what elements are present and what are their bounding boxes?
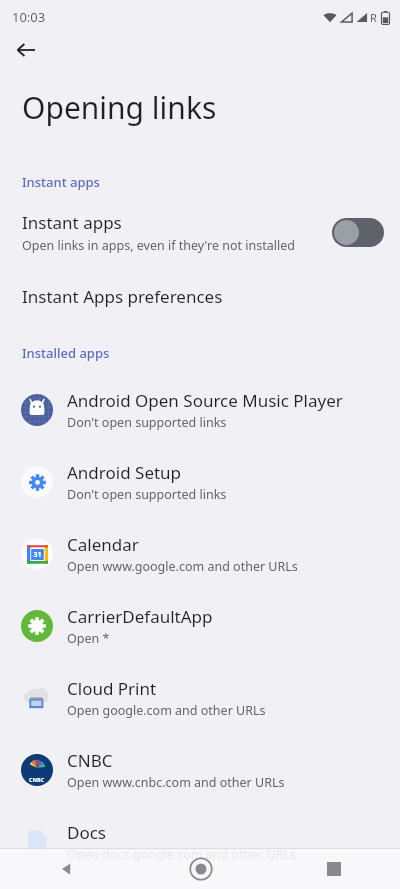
button[interactable]: Back <box>10 34 42 66</box>
button[interactable]: 31 <box>0 518 400 590</box>
button[interactable]: Docs <box>0 806 400 878</box>
staticText: Open www.cnbc.com and other URLs <box>67 774 285 791</box>
staticText: Instant Apps preferences <box>22 285 223 308</box>
staticText: Opening links <box>22 87 217 128</box>
button[interactable]: Instant Apps preferences <box>0 279 400 313</box>
staticText: Android Setup <box>67 461 182 484</box>
staticText: Open docs.google.com and other URLs <box>67 846 297 863</box>
staticText: R <box>370 10 377 25</box>
staticText: Open links in apps, even if they're not … <box>22 237 295 254</box>
staticText: Instant apps <box>22 173 100 191</box>
button[interactable]: Android Open Source Music Player <box>0 374 400 446</box>
staticText: Don't open supported links <box>67 486 227 503</box>
button[interactable]: Instant apps toggle <box>332 217 384 247</box>
staticText: 10:03 <box>12 8 46 26</box>
staticText: Docs <box>67 821 106 844</box>
staticText: Open * <box>67 630 110 647</box>
button[interactable]: CarrierDefaultApp <box>0 590 400 662</box>
button[interactable]: Cloud Print <box>0 662 400 734</box>
staticText: 31 <box>33 550 42 560</box>
button[interactable]: CNBC <box>0 734 400 806</box>
staticText: CNBC <box>29 776 45 783</box>
staticText: Calendar <box>67 533 139 556</box>
button[interactable]: Recent apps <box>267 848 400 889</box>
staticText: Open www.google.com and other URLs <box>67 558 298 575</box>
staticText: Instant apps <box>22 211 122 234</box>
staticText: Don't open supported links <box>67 414 227 431</box>
staticText: CNBC <box>67 749 113 772</box>
button[interactable]: Android Setup <box>0 446 400 518</box>
staticText: Cloud Print <box>67 677 157 700</box>
staticText: Installed apps <box>22 344 110 362</box>
staticText: Open google.com and other URLs <box>67 702 266 719</box>
staticText: CarrierDefaultApp <box>67 605 213 628</box>
button[interactable]: Instant apps <box>0 205 400 259</box>
staticText: Android Open Source Music Player <box>67 389 343 412</box>
button[interactable]: Back <box>0 848 134 889</box>
button[interactable]: Home <box>134 848 267 889</box>
